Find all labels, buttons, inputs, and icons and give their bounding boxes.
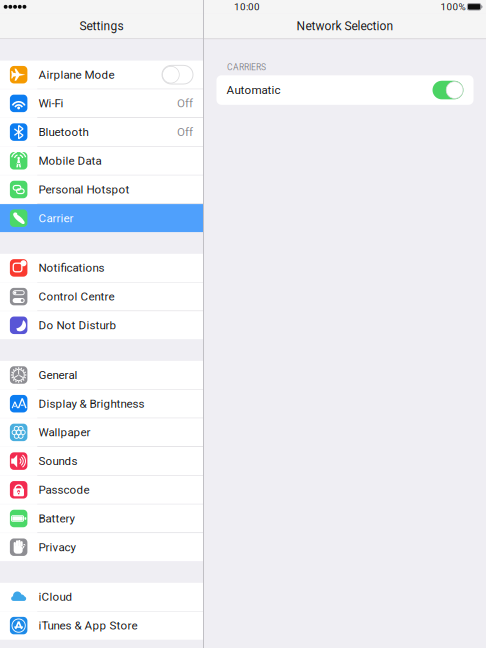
staticText: General bbox=[39, 368, 78, 382]
staticText: Do Not Disturb bbox=[39, 318, 117, 332]
staticText: Notifications bbox=[39, 261, 105, 275]
button[interactable]: Mobile Data bbox=[0, 147, 203, 175]
staticText: Carrier bbox=[39, 211, 74, 225]
staticText: Privacy bbox=[39, 540, 76, 554]
staticText: Wallpaper bbox=[39, 426, 91, 439]
button[interactable]: iTunes & App Store bbox=[0, 611, 203, 640]
staticText: Off bbox=[177, 97, 193, 110]
staticText: CARRIERS bbox=[227, 62, 266, 72]
button[interactable]: Airplane Mode bbox=[0, 61, 203, 89]
button[interactable]: Do Not Disturb bbox=[0, 311, 203, 339]
button[interactable]: Sounds bbox=[0, 447, 203, 475]
staticText: Battery bbox=[39, 512, 75, 525]
staticText: Mobile Data bbox=[39, 154, 102, 168]
staticText: Settings bbox=[79, 19, 123, 33]
staticText: iCloud bbox=[39, 590, 73, 604]
button[interactable]: Battery bbox=[0, 504, 203, 533]
button[interactable]: Automatic bbox=[216, 75, 473, 105]
staticText: Passcode bbox=[39, 483, 90, 497]
button[interactable]: Wi-Fi bbox=[0, 89, 203, 117]
staticText: 100% bbox=[440, 1, 465, 13]
button[interactable]: iCloud bbox=[0, 583, 203, 611]
button[interactable]: General bbox=[0, 361, 203, 389]
button[interactable]: Display & Brightness bbox=[0, 390, 203, 418]
staticText: 10:00 bbox=[234, 1, 260, 13]
button[interactable]: Wallpaper bbox=[0, 418, 203, 446]
staticText: Sounds bbox=[39, 454, 78, 468]
staticText: Wi-Fi bbox=[39, 97, 64, 110]
staticText: Personal Hotspot bbox=[39, 183, 130, 196]
staticText: Off bbox=[177, 125, 193, 139]
staticText: Control Centre bbox=[39, 290, 115, 303]
staticText: Automatic bbox=[226, 83, 280, 97]
button[interactable]: Bluetooth bbox=[0, 118, 203, 146]
button[interactable]: Passcode bbox=[0, 476, 203, 504]
button[interactable]: Notifications bbox=[0, 254, 203, 282]
button[interactable]: Privacy bbox=[0, 533, 203, 561]
staticText: Network Selection bbox=[296, 19, 393, 33]
button[interactable]: Control Centre bbox=[0, 282, 203, 311]
staticText: Display & Brightness bbox=[39, 397, 145, 410]
button[interactable]: Carrier bbox=[0, 204, 203, 232]
button[interactable]: Personal Hotspot bbox=[0, 175, 203, 204]
staticText: Airplane Mode bbox=[39, 68, 115, 81]
staticText: Bluetooth bbox=[39, 125, 89, 139]
staticText: iTunes & App Store bbox=[39, 619, 138, 632]
